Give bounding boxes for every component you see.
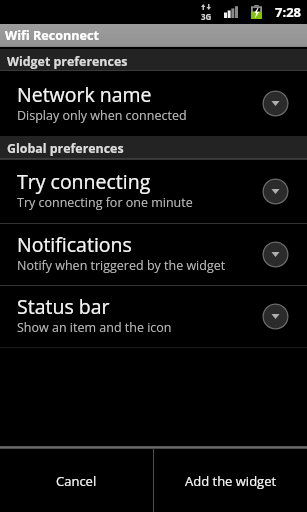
staticText: Add the widget xyxy=(185,472,277,490)
staticText: Notify when triggered by the widget xyxy=(17,257,226,274)
staticText: 3G xyxy=(201,11,211,22)
staticText: Status bar xyxy=(17,293,110,320)
staticText: Wifi Reconnect xyxy=(5,27,99,44)
button[interactable]: Add the widget xyxy=(154,449,307,512)
staticText: Widget preferences xyxy=(7,53,128,70)
staticText: Network name xyxy=(17,81,152,108)
staticText: Try connecting xyxy=(17,168,151,195)
button[interactable]: Expand xyxy=(262,178,289,205)
staticText: Display only when connected xyxy=(17,107,187,124)
staticText: Notifications xyxy=(17,231,132,258)
button[interactable]: Notifications xyxy=(0,223,307,285)
staticText: Try connecting for one minute xyxy=(17,194,193,211)
button[interactable]: Expand xyxy=(262,303,289,330)
button[interactable]: Cancel xyxy=(0,449,153,512)
staticText: Cancel xyxy=(56,472,97,490)
staticText: 7:28 xyxy=(275,3,302,21)
button[interactable]: Network name xyxy=(0,71,307,136)
staticText: Show an item and the icon xyxy=(17,319,172,336)
button[interactable]: Expand xyxy=(262,90,289,117)
button[interactable]: Try connecting xyxy=(0,159,307,223)
staticText: Global preferences xyxy=(7,140,124,157)
button[interactable]: Expand xyxy=(262,241,289,268)
button[interactable]: Status bar xyxy=(0,285,307,347)
